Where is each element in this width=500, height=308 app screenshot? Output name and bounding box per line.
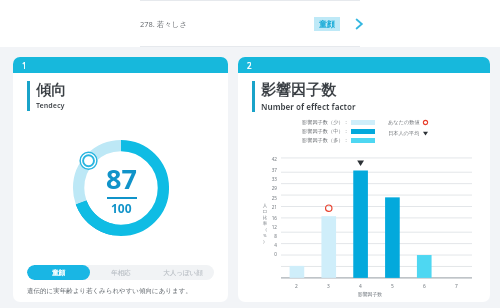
- button[interactable]: 童顔: [27, 265, 90, 280]
- staticText: 37: [261, 167, 277, 173]
- button[interactable]: 278. 若々しさ: [140, 16, 367, 32]
- staticText: 25: [261, 195, 277, 201]
- staticText: 42: [261, 156, 277, 162]
- staticText: 4: [359, 283, 362, 290]
- staticText: 童顔: [319, 19, 335, 29]
- staticText: 21: [261, 204, 277, 210]
- staticText: 16: [261, 215, 277, 221]
- staticText: 278. 若々しさ: [140, 19, 188, 29]
- staticText: 大人っぽい顔: [163, 269, 203, 277]
- staticText: 2: [295, 283, 298, 290]
- staticText: 29: [261, 185, 277, 191]
- staticText: 12: [261, 224, 277, 230]
- staticText: Number of effect factor: [261, 101, 356, 112]
- staticText: 8: [261, 233, 277, 239]
- staticText: 影響因子数（中）：: [302, 128, 349, 135]
- staticText: 100: [111, 200, 132, 216]
- staticText: 童顔: [52, 269, 65, 277]
- staticText: 2: [247, 60, 252, 71]
- staticText: Tendecy: [36, 101, 65, 111]
- staticText: 影響因子数（少）：: [302, 119, 349, 126]
- staticText: 影響因子数: [358, 291, 382, 297]
- staticText: 6: [423, 283, 426, 290]
- staticText: 影響因子数: [261, 81, 336, 100]
- staticText: 7: [455, 283, 458, 290]
- staticText: 人口比率（％）: [261, 203, 269, 245]
- staticText: 87: [106, 160, 137, 197]
- staticText: 傾向: [36, 81, 66, 100]
- button[interactable]: 大人っぽい顔: [152, 265, 214, 280]
- staticText: 年相応: [111, 269, 131, 277]
- staticText: 3: [327, 283, 330, 290]
- button[interactable]: 年相応: [90, 265, 152, 280]
- staticText: 1: [22, 60, 27, 71]
- staticText: 日本人の平均: [388, 130, 420, 137]
- staticText: あなたの数値: [388, 119, 420, 126]
- staticText: 5: [391, 283, 394, 290]
- staticText: 0: [261, 251, 277, 257]
- staticText: 影響因子数（多）：: [302, 137, 349, 144]
- other: Next: [351, 16, 367, 32]
- staticText: 33: [261, 176, 277, 182]
- staticText: 4: [261, 242, 277, 248]
- staticText: 遺伝的に実年齢より若くみられやすい傾向にあります。: [27, 287, 192, 295]
